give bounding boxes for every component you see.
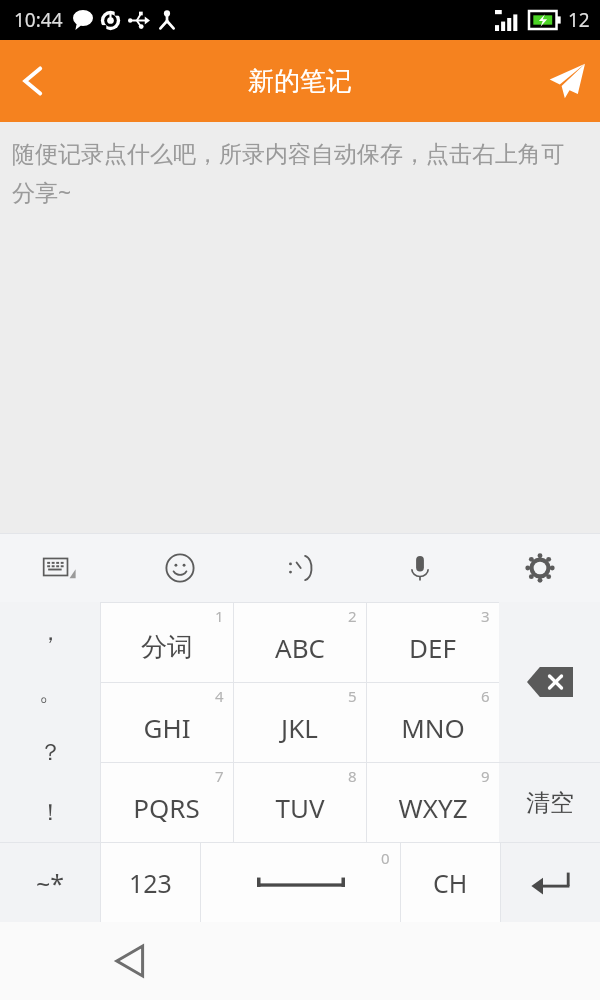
staticText: 1 (215, 606, 224, 626)
button[interactable]: 3 (366, 602, 499, 682)
button[interactable]: 1 (100, 602, 233, 682)
button[interactable]: CH (401, 843, 500, 922)
button[interactable]: 9 (366, 762, 499, 842)
button[interactable]: 清空 (499, 763, 600, 842)
button[interactable]: 5 (233, 682, 366, 762)
button[interactable]: Back (0, 48, 66, 114)
staticText: 。 (39, 678, 62, 707)
button[interactable]: 2 (233, 602, 366, 682)
staticText: ， (39, 618, 62, 647)
button[interactable]: 。 (0, 662, 100, 722)
staticText: TUV (275, 790, 325, 825)
button[interactable]: 7 (100, 762, 233, 842)
button[interactable]: ， (0, 602, 100, 662)
button[interactable]: Keyboard layout (0, 533, 120, 602)
button[interactable]: ！ (0, 782, 100, 842)
staticText: CH (433, 866, 468, 900)
staticText: 2 (348, 606, 357, 626)
button[interactable]: Backspace (499, 602, 600, 762)
staticText: 清空 (526, 788, 574, 818)
staticText: ~* (36, 866, 65, 900)
button[interactable]: Send (534, 48, 600, 114)
button[interactable]: Emoji (120, 533, 240, 602)
staticText: 4 (215, 686, 224, 706)
button[interactable]: 6 (366, 682, 499, 762)
staticText: GHI (143, 710, 191, 745)
staticText: WXYZ (398, 790, 468, 825)
staticText: 随便记录点什么吧，所录内容自动保存，点击右上角可分享~ (12, 140, 586, 208)
button[interactable]: ~* (0, 843, 100, 922)
staticText: 分词 (141, 631, 193, 664)
staticText: 12 (568, 7, 590, 33)
button[interactable]: ？ (0, 722, 100, 782)
button[interactable]: Emoticons (240, 533, 360, 602)
button[interactable]: Settings (480, 533, 600, 602)
staticText: 10:44 (14, 7, 63, 33)
staticText: 3 (481, 606, 490, 626)
staticText: PQRS (133, 790, 200, 825)
staticText: 新的笔记 (248, 65, 352, 98)
button[interactable]: 4 (100, 682, 233, 762)
button[interactable]: 随便记录点什么吧，所录内容自动保存，点击右上角可分享~ (0, 122, 600, 533)
staticText: DEF (409, 630, 456, 665)
button[interactable]: Enter (501, 843, 600, 922)
staticText: 0 (381, 848, 390, 868)
staticText: ？ (39, 738, 62, 767)
button[interactable]: Voice input (360, 533, 480, 602)
button[interactable]: Space (201, 843, 400, 922)
staticText: MNO (401, 710, 465, 745)
staticText: 6 (481, 686, 490, 706)
staticText: 123 (129, 866, 172, 900)
button[interactable]: 123 (101, 843, 200, 922)
staticText: 7 (215, 766, 224, 786)
staticText: JKL (281, 710, 318, 745)
button[interactable]: 8 (233, 762, 366, 842)
staticText: 9 (481, 766, 490, 786)
staticText: 8 (348, 766, 357, 786)
staticText: 5 (348, 686, 357, 706)
staticText: ABC (275, 630, 325, 665)
button[interactable]: Back (95, 922, 165, 1000)
staticText: ！ (39, 798, 62, 827)
